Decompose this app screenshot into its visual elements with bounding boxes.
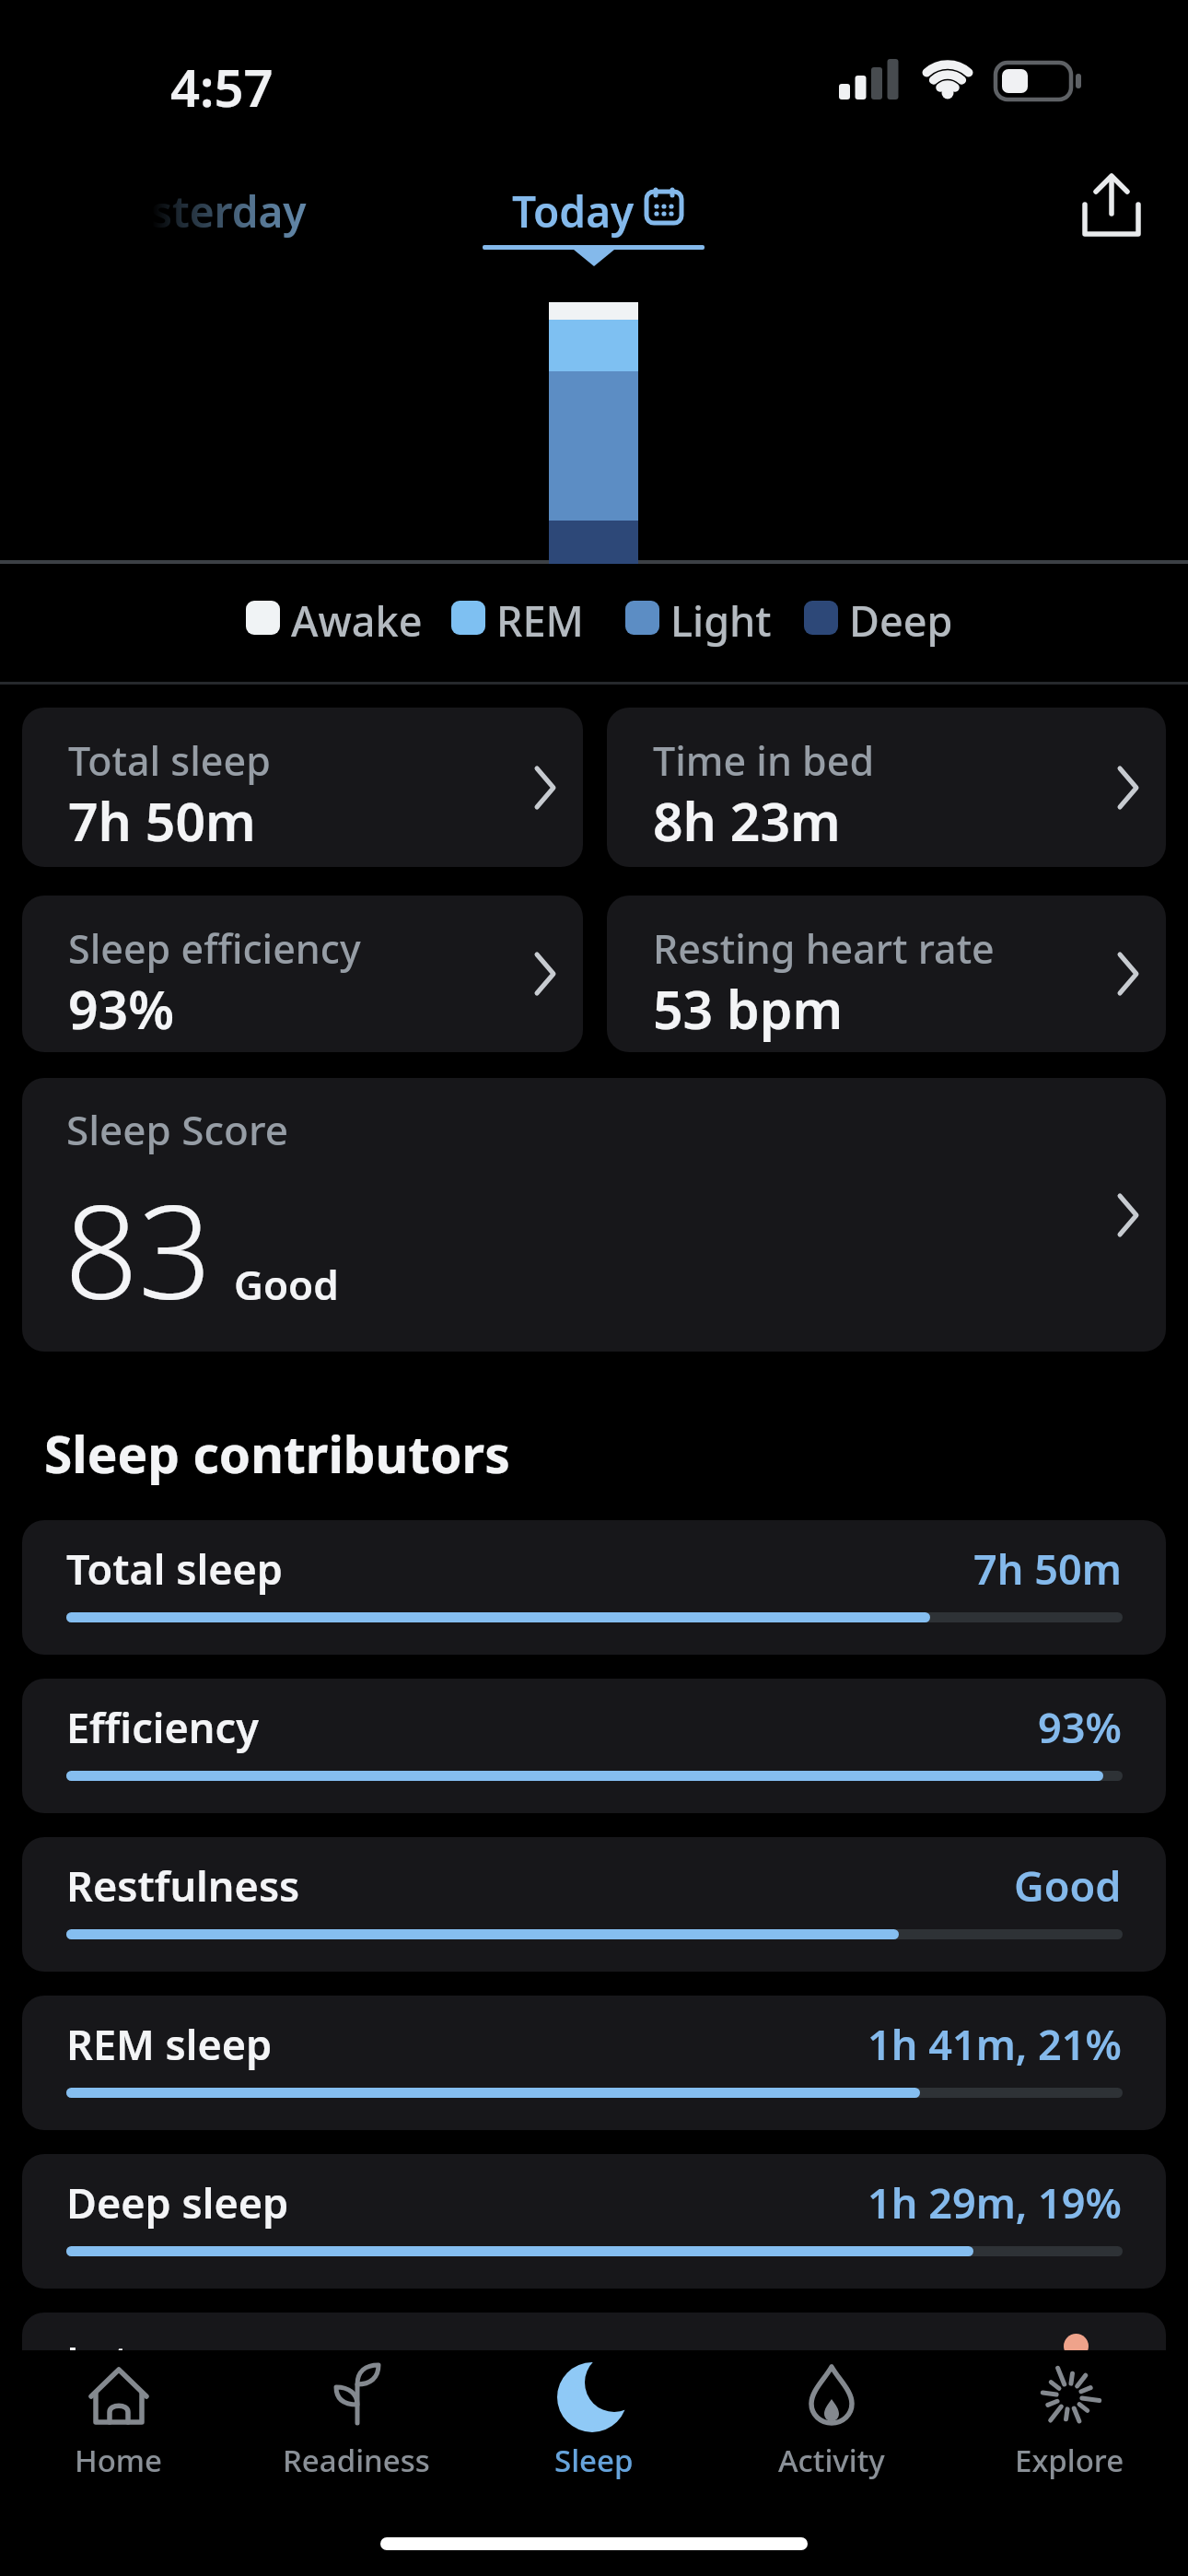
staticText: Yesterday (103, 182, 307, 240)
staticText: Activity (778, 2440, 885, 2481)
staticText: Sleep Score (66, 1102, 288, 1157)
staticText: Awake (291, 592, 423, 649)
button[interactable]: Total sleep (22, 1520, 1166, 1655)
staticText: Readiness (283, 2440, 430, 2481)
button[interactable]: REM sleep (22, 1996, 1166, 2130)
staticText: 93% (68, 973, 175, 1045)
staticText: Today (512, 182, 635, 240)
staticText: Deep sleep (66, 2174, 289, 2231)
staticText: REM (496, 592, 584, 649)
staticText: Total sleep (66, 1540, 283, 1597)
button[interactable]: Yesterday (55, 166, 304, 240)
staticText: Home (75, 2440, 163, 2481)
staticText: Latency (66, 2333, 225, 2389)
staticText: 7h 50m (68, 785, 256, 857)
staticText: Explore (1015, 2440, 1124, 2481)
staticText: Efficiency (66, 1699, 259, 1755)
staticText: 53 bpm (653, 973, 844, 1045)
staticText: 1h 29m, 19% (868, 2174, 1122, 2231)
staticText: Restfulness (66, 1857, 300, 1914)
button[interactable]: Home (0, 2359, 238, 2511)
button[interactable]: Sleep efficiency (22, 896, 583, 1052)
button[interactable]: Restfulness (22, 1837, 1166, 1972)
staticText: Time in bed (653, 733, 875, 788)
staticText: Light (670, 592, 772, 649)
staticText: 4:57 (170, 52, 274, 122)
button[interactable] (479, 161, 709, 272)
staticText: 7h 50m (973, 1540, 1122, 1597)
button[interactable]: Deep sleep (22, 2154, 1166, 2289)
staticText: Resting heart rate (653, 921, 995, 976)
staticText: Total sleep (68, 733, 271, 788)
staticText: Sleep contributors (44, 1419, 510, 1488)
button[interactable]: Time in bed (607, 708, 1166, 867)
button[interactable]: Readiness (238, 2359, 475, 2511)
staticText: REM sleep (66, 2016, 273, 2072)
staticText: 8h 23m (653, 785, 841, 857)
staticText: Sleep efficiency (68, 921, 361, 976)
button[interactable]: Activity (713, 2359, 950, 2511)
staticText: Good (1014, 1857, 1122, 1914)
button[interactable]: Explore (950, 2359, 1188, 2511)
staticText: 93% (1038, 1699, 1122, 1755)
staticText: 83 (64, 1161, 212, 1337)
button[interactable]: Total sleep (22, 708, 583, 867)
button[interactable]: Efficiency (22, 1679, 1166, 1813)
staticText: Sleep (554, 2440, 634, 2481)
staticText: Deep (849, 592, 953, 649)
button[interactable]: Sleep (475, 2359, 713, 2511)
button[interactable]: Latency (22, 2313, 1166, 2447)
staticText: 1h 41m, 21% (868, 2016, 1122, 2072)
button[interactable]: Resting heart rate (607, 896, 1166, 1052)
button[interactable]: Sleep Score (22, 1078, 1166, 1352)
staticText: Good (234, 1257, 339, 1312)
button[interactable] (1079, 171, 1144, 238)
